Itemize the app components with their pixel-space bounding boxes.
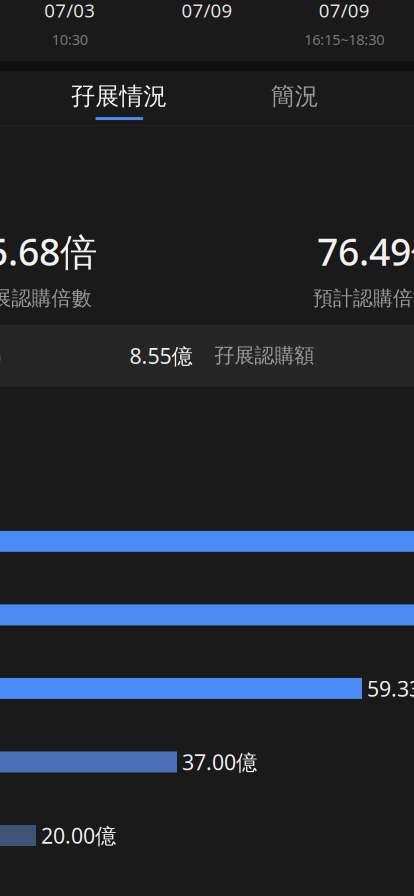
staticText: 35.68倍: [0, 226, 97, 276]
staticText: 募資額 (公開): [0, 342, 1, 369]
staticText: 孖展情況: [71, 82, 167, 111]
staticText: 8.55億: [129, 341, 192, 370]
staticText: 76.49倍: [317, 226, 414, 276]
staticText: 37.00億: [182, 748, 257, 776]
staticText: 07/09: [181, 0, 232, 23]
staticText: 07/09: [319, 0, 370, 23]
staticText: 10:30: [52, 30, 88, 49]
button[interactable]: 孖展情況: [31, 71, 207, 125]
staticText: 20.00億: [41, 821, 116, 850]
staticText: 16:15~18:30: [304, 30, 384, 49]
staticText: 預計認購倍數: [313, 286, 414, 311]
staticText: 59.33億: [367, 674, 414, 703]
button[interactable]: 簡況: [207, 71, 382, 125]
staticText: 簡況: [271, 82, 319, 111]
staticText: 孖展認購額: [214, 343, 314, 368]
staticText: 07/03: [44, 0, 95, 23]
staticText: 孖展認購倍數: [0, 286, 91, 311]
